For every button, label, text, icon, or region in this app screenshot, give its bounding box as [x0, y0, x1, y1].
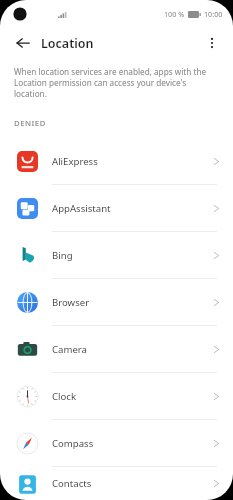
staticText: Clock — [52, 390, 213, 403]
button[interactable]: Bing — [0, 232, 233, 278]
button[interactable]: More options — [199, 30, 225, 56]
button[interactable]: Camera — [0, 326, 233, 372]
button[interactable]: AppAssistant — [0, 185, 233, 231]
staticText: Location — [41, 35, 94, 52]
button[interactable]: Compass — [0, 420, 233, 466]
staticText: Contacts — [52, 477, 213, 490]
staticText: Bing — [52, 249, 213, 262]
button[interactable]: Clock — [0, 373, 233, 419]
staticText: Browser — [52, 296, 213, 309]
staticText: AppAssistant — [52, 202, 213, 215]
staticText: 10:00 — [204, 9, 223, 19]
staticText: AliExpress — [52, 155, 213, 168]
staticText: When location services are enabled, apps… — [14, 66, 217, 99]
staticText: Compass — [52, 437, 213, 450]
button[interactable]: Back — [9, 29, 37, 57]
staticText: Camera — [52, 343, 213, 356]
button[interactable]: Contacts — [0, 467, 233, 500]
button[interactable]: AliExpress — [0, 138, 233, 184]
staticText: DENIED — [14, 118, 46, 129]
button[interactable]: Browser — [0, 279, 233, 325]
staticText: 100 % — [164, 9, 185, 19]
